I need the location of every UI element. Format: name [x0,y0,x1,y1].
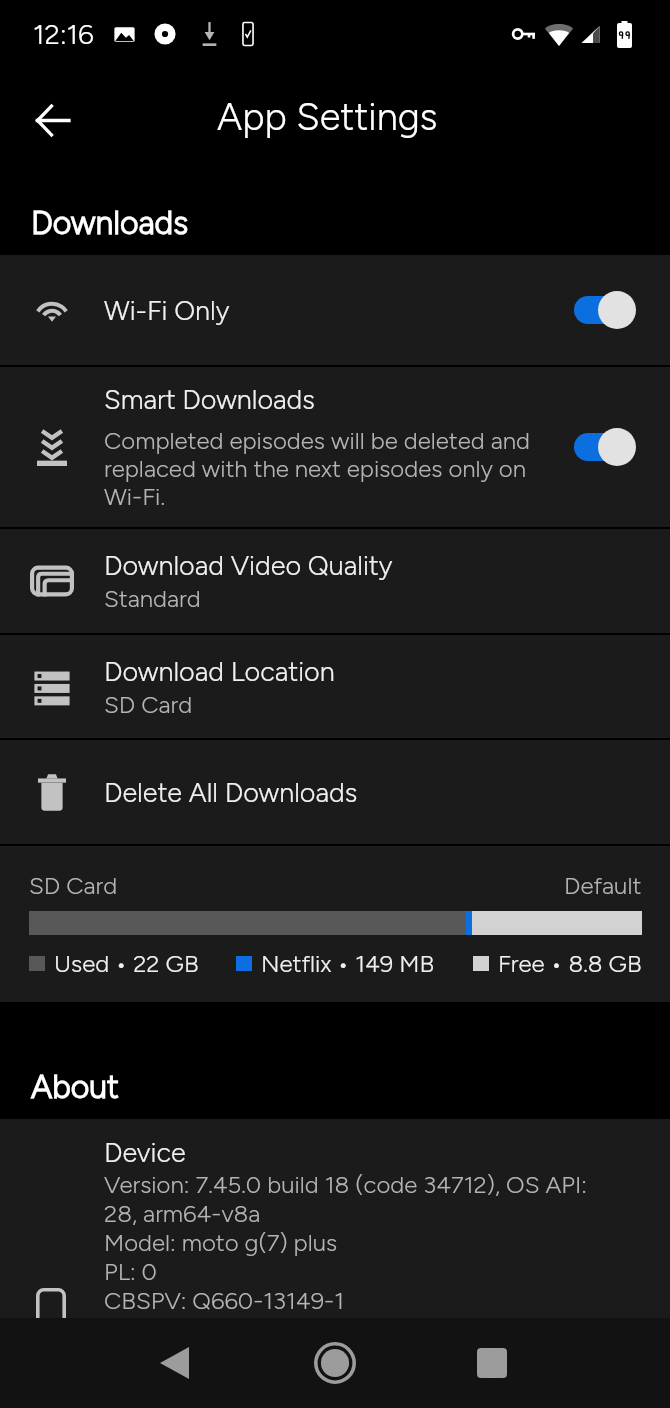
staticText: 28, arm64-v8a [104,1199,261,1228]
staticText: 12:16 [33,17,94,51]
button[interactable]: Wi-Fi Only [0,255,670,365]
button[interactable]: Device [0,1119,670,1318]
button[interactable]: Back [134,1323,214,1403]
staticText: Netflix • 149 MB [261,949,435,978]
button[interactable]: Back [18,86,86,154]
staticText: Model: moto g(7) plus [104,1228,338,1257]
staticText: Version: 7.45.0 build 18 (code 34712), O… [104,1170,587,1199]
button[interactable]: Delete All Downloads [0,740,670,844]
staticText: Download Video Quality [104,549,393,581]
staticText: Completed episodes will be deleted and r… [104,426,556,511]
staticText: Default [564,871,642,900]
staticText: SD Card [104,690,193,719]
staticText: PL: 0 [104,1257,157,1286]
staticText: Delete All Downloads [104,776,358,808]
staticText: Standard [104,584,201,613]
staticText: SD Card [29,871,118,900]
staticText: Download Location [104,655,335,687]
button[interactable]: Download Location [0,635,670,738]
button[interactable]: Recent apps [452,1323,532,1403]
staticText: App Settings [217,94,438,140]
button[interactable]: Home [295,1323,375,1403]
button[interactable]: Download Video Quality [0,529,670,633]
staticText: Downloads [31,204,189,242]
staticText: Wi-Fi Only [104,294,230,326]
staticText: Used • 22 GB [54,949,199,978]
staticText: Device [104,1136,186,1168]
staticText: Smart Downloads [104,383,315,415]
staticText: About [31,1068,119,1106]
staticText: CBSPV: Q660-13149-1 [104,1286,344,1315]
button[interactable]: Smart Downloads [0,367,670,527]
staticText: Free • 8.8 GB [498,949,642,978]
